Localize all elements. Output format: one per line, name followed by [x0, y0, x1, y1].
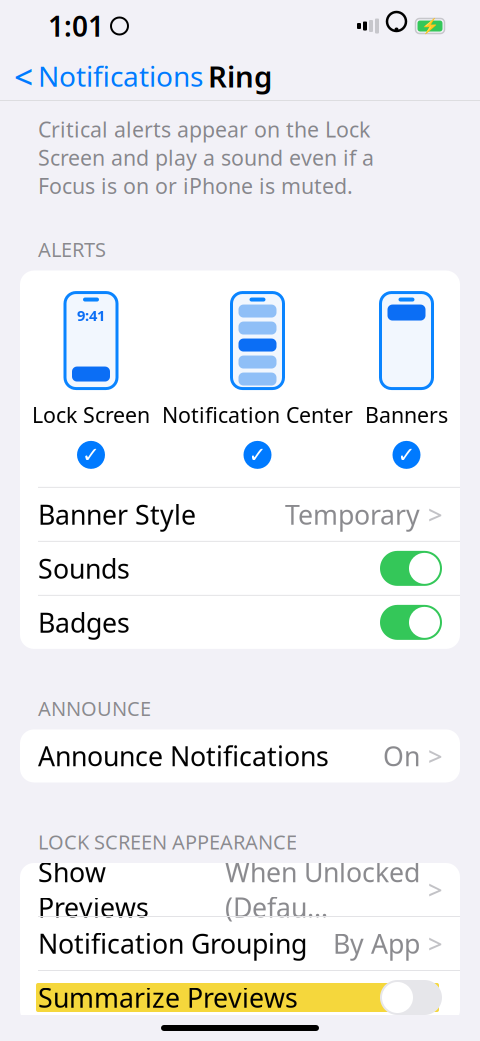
staticText: > [428, 873, 442, 906]
staticText: 9:41 [77, 305, 105, 325]
button[interactable]: 9:41 [32, 288, 150, 471]
staticText: Ring [208, 56, 272, 95]
staticText: By App [333, 926, 420, 961]
button[interactable]: Sounds [20, 542, 460, 595]
button[interactable]: Show Previews [20, 863, 460, 916]
staticText: ⚡ [421, 18, 439, 34]
staticText: Announce Notifications [38, 738, 329, 774]
staticText: ANNOUNCE [38, 695, 151, 721]
staticText: On [383, 738, 420, 774]
staticText: ✓ [82, 443, 100, 467]
staticText: Banner Style [38, 497, 196, 532]
staticText: Critical alerts appear on the Lock Scree… [38, 115, 374, 200]
staticText: Summarize Previews [38, 980, 298, 1015]
staticText: Notification Center [162, 400, 353, 429]
button[interactable]: Banners [365, 288, 448, 471]
staticText: Show Previews [38, 854, 149, 925]
staticText: Banners [365, 400, 448, 429]
staticText: When Unlocked (Defau… [225, 854, 420, 925]
button[interactable]: Badges [20, 596, 460, 649]
staticText: > [428, 498, 442, 531]
button[interactable]: Notification Center [162, 288, 353, 471]
staticText: Notifications [38, 57, 203, 95]
staticText: ALERTS [38, 236, 106, 263]
staticText: 1:01 [48, 7, 104, 45]
button[interactable]: < [0, 48, 203, 104]
staticText: Lock Screen [32, 400, 150, 429]
staticText: ✓ [248, 443, 266, 467]
staticText: ✓ [397, 443, 415, 467]
button[interactable]: Banner Style [20, 488, 460, 541]
staticText: Badges [38, 605, 130, 640]
staticText: < [14, 54, 33, 98]
staticText: Notification Grouping [38, 926, 307, 961]
button[interactable]: Summarize Previews [20, 971, 460, 1024]
staticText: LOCK SCREEN APPEARANCE [38, 828, 297, 855]
staticText: > [428, 739, 442, 773]
staticText: Temporary [285, 497, 420, 532]
button[interactable]: Announce Notifications [20, 729, 460, 782]
staticText: > [428, 927, 442, 960]
staticText: Sounds [38, 551, 130, 586]
button[interactable]: Notification Grouping [20, 917, 460, 970]
